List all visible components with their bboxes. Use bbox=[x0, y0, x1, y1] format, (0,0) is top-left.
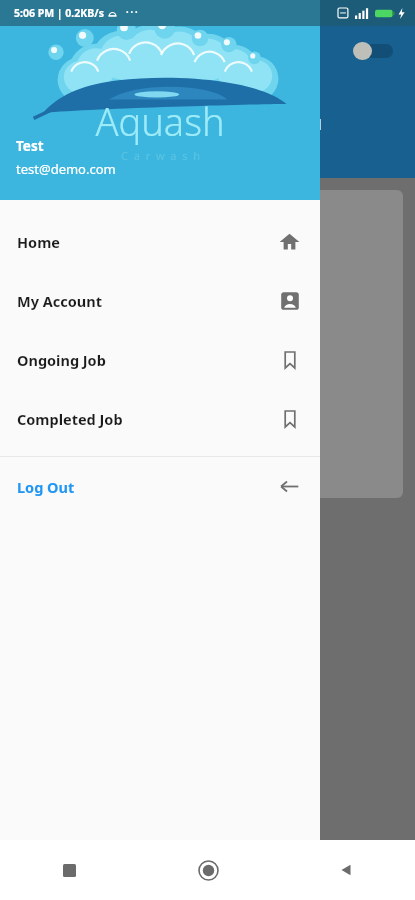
other: My Account bbox=[280, 291, 300, 311]
staticText: Completed bbox=[250, 115, 323, 134]
button[interactable]: Recent apps bbox=[0, 840, 139, 900]
button[interactable]: Ongoing Job bbox=[0, 330, 320, 389]
other: Job bbox=[280, 350, 300, 370]
staticText: Test bbox=[16, 137, 44, 155]
staticText: My Account bbox=[17, 291, 102, 311]
other: Home bbox=[279, 231, 300, 252]
staticText: Completed Job bbox=[17, 409, 123, 429]
button[interactable]: Home bbox=[0, 212, 320, 271]
staticText: Ongoing Job bbox=[17, 350, 106, 370]
staticText: 5:06 PM | 0.2KB/s bbox=[14, 6, 104, 20]
staticText: Home bbox=[17, 232, 60, 252]
other: Job bbox=[280, 409, 300, 429]
button[interactable]: My Account bbox=[0, 271, 320, 330]
staticText: test@demo.com bbox=[16, 160, 116, 178]
staticText: • • • bbox=[126, 8, 138, 18]
staticText: Log Out bbox=[17, 477, 75, 497]
button[interactable]: Home bbox=[139, 840, 277, 900]
button[interactable]: Log Out bbox=[0, 457, 320, 516]
other: Log Out bbox=[279, 476, 300, 497]
staticText: Aquash bbox=[95, 95, 225, 147]
button[interactable]: Back bbox=[277, 840, 415, 900]
button[interactable]: Completed Job bbox=[0, 389, 320, 448]
staticText: C a r w a s h bbox=[121, 148, 200, 163]
button[interactable]: Toggle bbox=[353, 42, 393, 60]
